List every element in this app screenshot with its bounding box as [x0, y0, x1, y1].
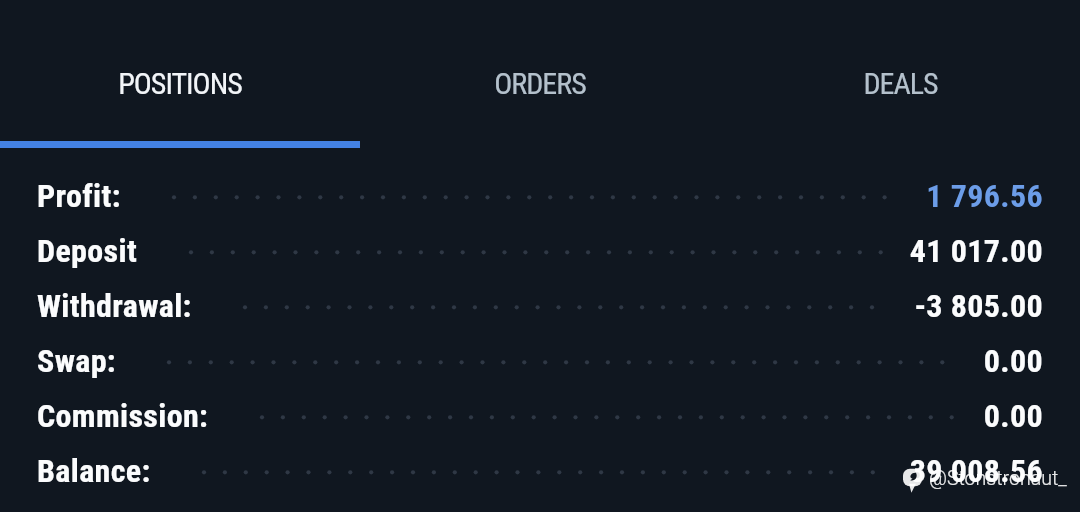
- staticText: Profit:: [37, 177, 121, 215]
- button[interactable]: POSITIONS: [0, 0, 360, 148]
- button[interactable]: Swap:: [0, 333, 1080, 388]
- staticText: Swap:: [37, 342, 116, 380]
- button[interactable]: Balance:: [0, 443, 1080, 498]
- staticText: POSITIONS: [118, 66, 242, 101]
- staticText: 0.00: [983, 397, 1043, 435]
- staticText: 1 796.56: [926, 177, 1043, 215]
- staticText: Withdrawal:: [37, 287, 192, 325]
- staticText: 41 017.00: [909, 232, 1043, 270]
- staticText: ORDERS: [494, 66, 586, 101]
- button[interactable]: Commission:: [0, 388, 1080, 443]
- button[interactable]: Deposit: [0, 223, 1080, 278]
- staticText: Commission:: [37, 397, 209, 435]
- staticText: DEALS: [863, 66, 938, 101]
- staticText: 39 008.56: [909, 452, 1043, 490]
- other: Channel logo: [903, 466, 922, 493]
- staticText: Balance:: [37, 452, 151, 490]
- staticText: Deposit: [37, 232, 138, 270]
- staticText: @Stonstronaut_: [929, 467, 1067, 490]
- button[interactable]: Profit:: [0, 168, 1080, 223]
- button[interactable]: ORDERS: [360, 0, 720, 148]
- button[interactable]: DEALS: [720, 0, 1080, 148]
- button[interactable]: Withdrawal:: [0, 278, 1080, 333]
- staticText: 0.00: [983, 342, 1043, 380]
- staticText: -3 805.00: [914, 287, 1043, 325]
